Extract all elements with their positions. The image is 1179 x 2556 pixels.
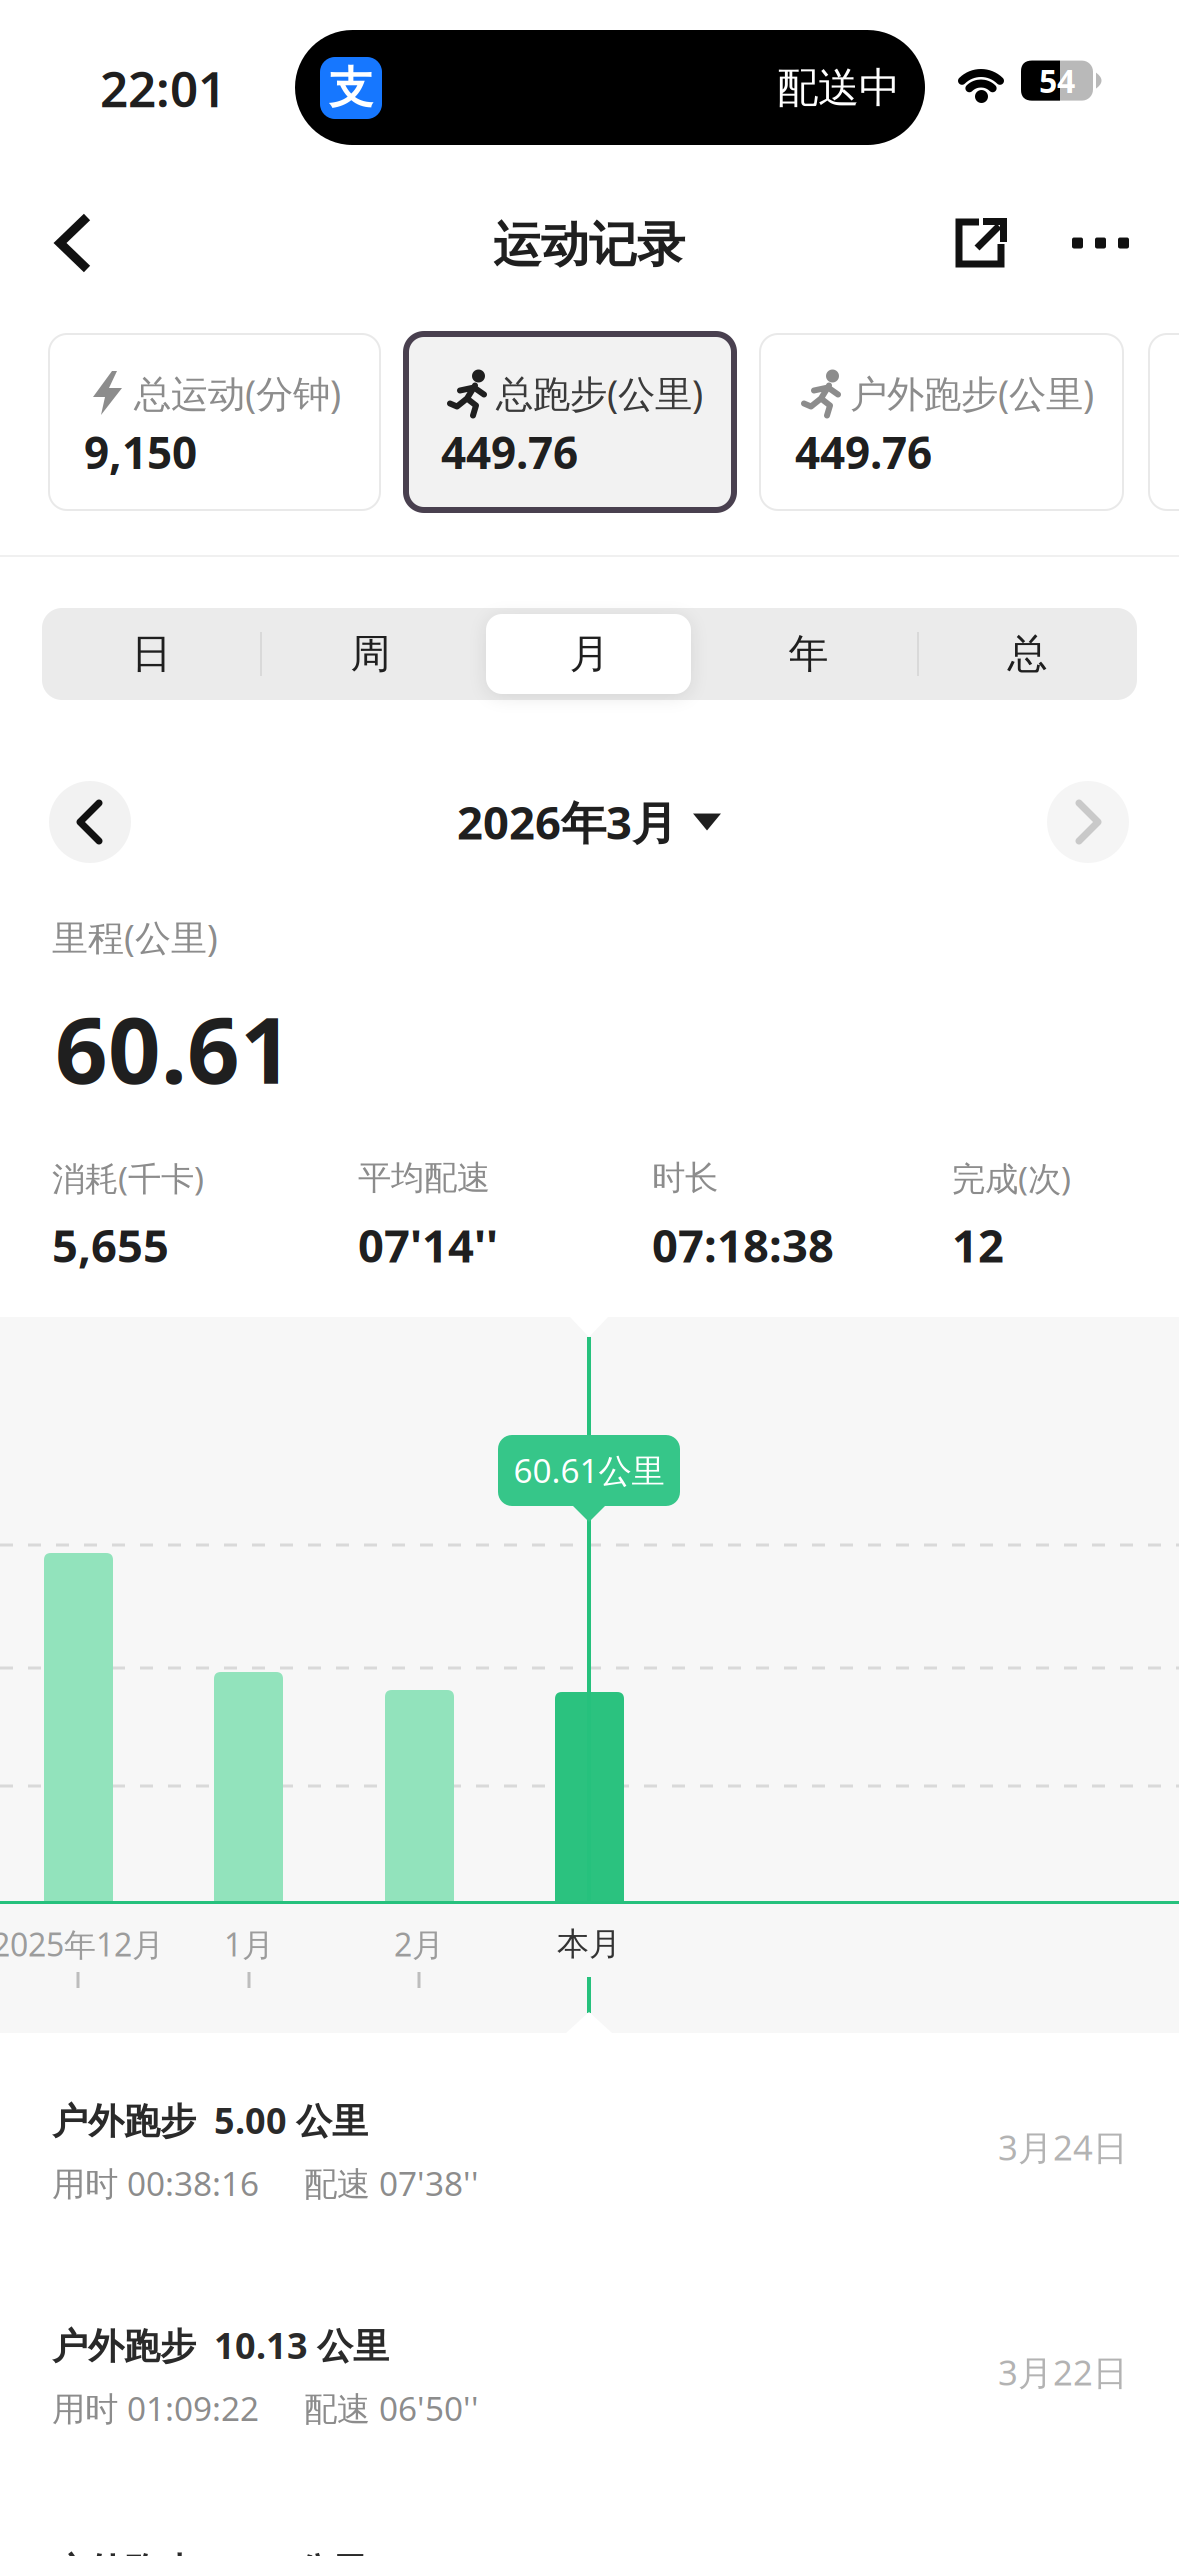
staticText: 07'14''	[358, 1215, 498, 1275]
staticText: 2月	[394, 1923, 444, 1965]
staticText: 2026年3月	[457, 792, 677, 852]
button[interactable]: 户外跑步 5.00 公里	[0, 2085, 1179, 2245]
button[interactable]	[40, 207, 120, 287]
staticText: 户外跑步 5.00 公里	[52, 2096, 368, 2144]
button[interactable]: 总跑步(公里)	[406, 334, 734, 510]
staticText: 里程(公里)	[52, 913, 218, 961]
button[interactable]	[49, 781, 131, 863]
button[interactable]	[1072, 223, 1129, 263]
staticText: 配送中	[777, 63, 900, 113]
staticText: 12	[952, 1215, 1004, 1275]
staticText: 月	[569, 629, 609, 678]
button[interactable]: 日	[42, 608, 261, 700]
staticText: 60.61	[55, 987, 293, 1109]
button[interactable]: 户外跑步 9.06 公里	[0, 2535, 1179, 2556]
staticText: 运动记录	[493, 215, 685, 274]
staticText: 07:18:38	[652, 1215, 834, 1275]
button[interactable]	[1047, 781, 1129, 863]
staticText: 年	[788, 629, 828, 678]
staticText: 22:01	[100, 55, 226, 121]
staticText: 日	[131, 629, 171, 678]
staticText: 户外跑步 9.06 公里	[52, 2546, 368, 2556]
button[interactable]: 年	[699, 608, 918, 700]
button[interactable]: 周	[261, 608, 480, 700]
staticText: 5,655	[52, 1215, 169, 1275]
staticText: 60.61公里	[513, 1448, 664, 1492]
staticText: 消耗(千卡)	[52, 1156, 204, 1200]
staticText: 总	[1007, 629, 1047, 678]
staticText: 户外跑步(公里)	[850, 368, 1094, 418]
button[interactable]: 总	[918, 608, 1137, 700]
button[interactable]: 月	[480, 608, 699, 700]
staticText: 本月	[557, 1924, 621, 1964]
staticText: 9,150	[84, 423, 197, 481]
staticText: 支	[329, 61, 373, 115]
staticText: 总运动(分钟)	[134, 368, 341, 418]
staticText: 周	[350, 629, 390, 678]
staticText: 平均配速	[358, 1157, 490, 1198]
staticText: 3月24日	[998, 2124, 1128, 2170]
staticText: 3月22日	[998, 2349, 1128, 2395]
staticText: 54	[1039, 59, 1075, 102]
staticText: 449.76	[441, 423, 578, 481]
staticText: 449.76	[795, 423, 932, 481]
button[interactable]	[955, 218, 1007, 270]
staticText: 总跑步(公里)	[496, 368, 703, 418]
button[interactable]: 室内跑步(公里)	[1149, 334, 1179, 510]
button[interactable]: 户外跑步 10.13 公里	[0, 2310, 1179, 2470]
staticText: 户外跑步 10.13 公里	[52, 2321, 389, 2369]
staticText: 2025年12月	[0, 1923, 164, 1965]
staticText: 用时 01:09:22 配速 06'50''	[52, 2386, 479, 2430]
staticText: 时长	[652, 1157, 718, 1198]
button[interactable]: 总运动(分钟)	[49, 334, 380, 510]
button[interactable]: 户外跑步(公里)	[760, 334, 1123, 510]
button[interactable]: 2026年3月	[457, 787, 721, 857]
staticText: 用时 00:38:16 配速 07'38''	[52, 2161, 479, 2205]
staticText: 1月	[224, 1923, 274, 1965]
staticText: 完成(次)	[952, 1156, 1071, 1200]
